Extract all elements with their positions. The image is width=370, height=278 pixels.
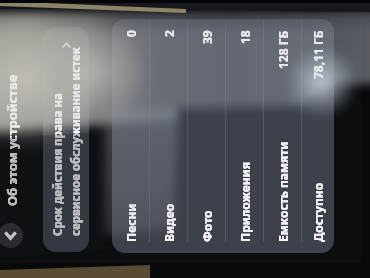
staticText: 78,11 ГБ	[310, 30, 326, 79]
staticText: Емкость памяти	[275, 141, 291, 242]
staticText: Фото	[199, 210, 215, 242]
button[interactable]: Срок действия права на	[43, 27, 89, 252]
staticText: Песни	[123, 203, 139, 242]
button[interactable]: Видео	[150, 19, 187, 253]
staticText: Приложения	[237, 162, 253, 242]
staticText: Видео	[161, 203, 177, 242]
staticText: Срок действия права на	[50, 93, 66, 236]
staticText: Об этом устройстве	[3, 74, 21, 206]
staticText: Емкость памяти	[275, 141, 291, 242]
button[interactable]: Фото	[188, 19, 225, 253]
staticText: сервисное обслуживание истек	[68, 47, 84, 236]
staticText: 18	[237, 30, 253, 44]
staticText: Песни	[123, 203, 139, 242]
staticText: 78,11 ГБ	[310, 30, 326, 79]
staticText: Приложения	[237, 162, 253, 242]
staticText: сервисное обслуживание истек	[68, 47, 84, 236]
staticText: Фото	[199, 210, 215, 242]
button[interactable]: Фото	[188, 19, 225, 253]
staticText: 39	[199, 30, 215, 44]
staticText: 39	[199, 30, 215, 44]
button[interactable]: Приложения	[226, 19, 263, 253]
staticText: 0	[123, 30, 139, 37]
staticText: Доступно	[310, 182, 326, 242]
button[interactable]: Доступно	[302, 19, 334, 253]
button[interactable]: Back	[0, 223, 23, 248]
button[interactable]: Доступно	[302, 19, 334, 253]
button[interactable]: Back	[0, 223, 23, 248]
button[interactable]: Емкость памяти	[264, 19, 301, 253]
staticText: Об этом устройстве	[3, 74, 21, 206]
staticText: Доступно	[310, 182, 326, 242]
staticText: 0	[123, 30, 139, 37]
button[interactable]: Приложения	[226, 19, 263, 253]
staticText: 2	[161, 30, 177, 37]
staticText: 18	[237, 30, 253, 44]
staticText: 128 ГБ	[275, 30, 291, 69]
button[interactable]: Срок действия права на	[43, 27, 89, 252]
staticText: 128 ГБ	[275, 30, 291, 69]
button[interactable]: Песни	[112, 19, 149, 253]
button[interactable]: Емкость памяти	[264, 19, 301, 253]
staticText: 2	[161, 30, 177, 37]
button[interactable]: Видео	[150, 19, 187, 253]
staticText: Видео	[161, 203, 177, 242]
staticText: Срок действия права на	[50, 93, 66, 236]
button[interactable]: Песни	[112, 19, 149, 253]
